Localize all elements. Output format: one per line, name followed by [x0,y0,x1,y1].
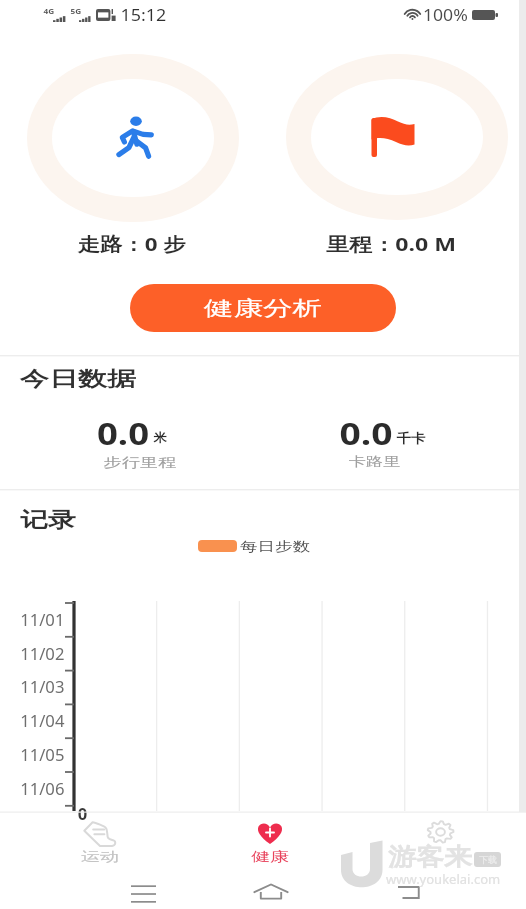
staticText: 4G [43,6,54,16]
staticText: 走路：0 步 [78,231,186,256]
staticText: 15:12 [120,4,166,26]
staticText: 5G [70,6,81,16]
staticText: 千卡 [397,430,425,446]
staticText: 100% [423,4,468,26]
staticText: 11/01 [20,609,65,631]
staticText: 健康 [251,848,289,864]
staticText: 卡路里 [349,453,400,469]
button[interactable]: 设置 [393,816,489,870]
staticText: 记录 [20,507,76,533]
staticText: 0 [78,803,88,825]
staticText: www.youkelai.com [386,870,501,888]
button[interactable] [222,816,318,870]
button[interactable]: 健康分析 [130,284,396,332]
staticText: 里程：0.0 M [326,231,457,256]
staticText: 11/02 [20,643,65,665]
staticText: 今日数据 [20,366,136,392]
staticText: 下载 [479,854,497,865]
staticText: 米 [153,430,167,445]
staticText: 步行里程 [104,454,176,470]
staticText: 11/06 [20,778,65,800]
staticText: 0.0 [97,412,150,454]
staticText: 11/04 [20,710,65,732]
staticText: 11/03 [20,676,65,698]
button[interactable] [52,816,148,870]
staticText: 运动 [81,848,119,864]
staticText: 游客来 [388,842,472,872]
staticText: 健康分析 [204,296,322,321]
staticText: 每日步数 [240,538,310,554]
staticText: 0.0 [339,412,393,454]
staticText: 11/05 [20,744,65,766]
button[interactable]: Home [238,876,304,909]
button[interactable]: Recents [110,876,176,909]
button[interactable]: Back [374,876,440,909]
